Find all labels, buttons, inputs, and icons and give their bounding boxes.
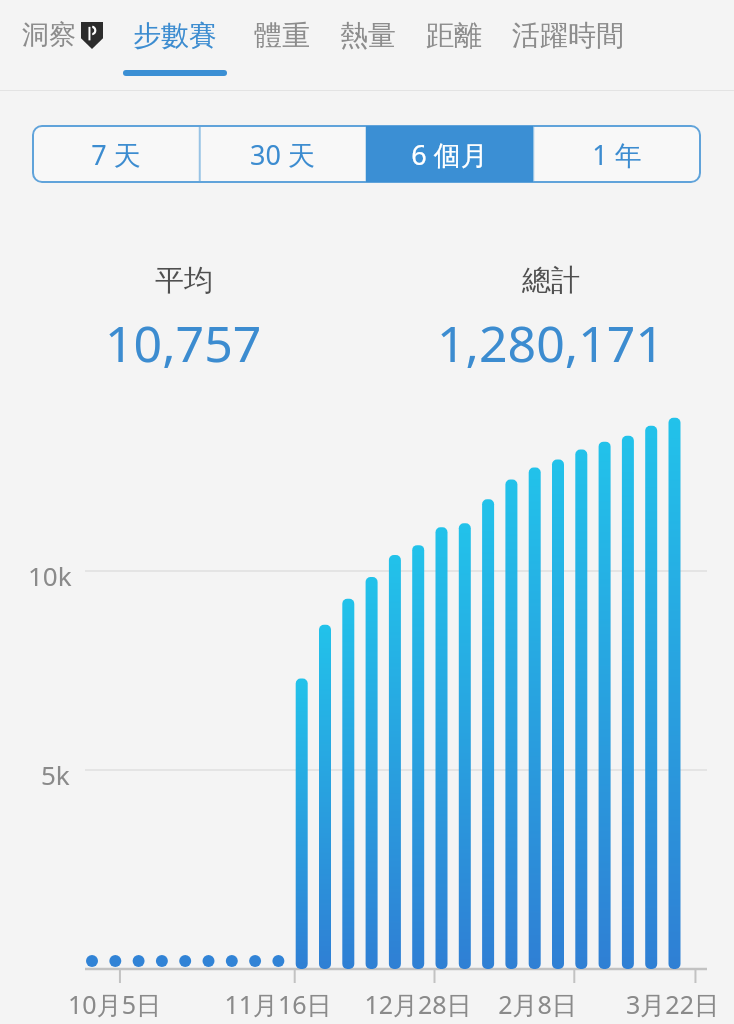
staticText: 步數賽 xyxy=(133,18,217,53)
staticText: 熱量 xyxy=(340,18,396,53)
staticText: 活躍時間 xyxy=(512,18,624,53)
staticText: 10,757 xyxy=(105,309,262,377)
button[interactable]: 1 年 xyxy=(533,126,700,182)
staticText: 3月22日 xyxy=(626,987,719,1021)
other: Insight premium badge xyxy=(81,22,103,49)
staticText: 平均 xyxy=(155,262,213,299)
staticText: 洞察 xyxy=(22,18,76,52)
button[interactable]: 體重 xyxy=(239,0,325,78)
button[interactable]: 6 個月 xyxy=(366,126,533,182)
staticText: 體重 xyxy=(254,18,310,53)
button[interactable]: 洞察 xyxy=(14,0,111,78)
staticText: 2月8日 xyxy=(498,987,577,1021)
staticText: 30 天 xyxy=(250,136,315,173)
button[interactable]: 步數賽 xyxy=(123,0,227,91)
staticText: 1,280,171 xyxy=(437,309,664,377)
button[interactable]: 7 天 xyxy=(33,126,199,182)
button[interactable]: 距離 xyxy=(411,0,497,78)
staticText: 1 年 xyxy=(592,136,642,173)
staticText: 10k xyxy=(28,558,72,593)
button[interactable]: 活躍時間 xyxy=(497,0,639,78)
staticText: 總計 xyxy=(522,262,580,299)
button[interactable]: 熱量 xyxy=(325,0,411,78)
staticText: 12月28日 xyxy=(364,987,472,1021)
staticText: 距離 xyxy=(426,18,482,53)
staticText: 6 個月 xyxy=(411,136,488,173)
staticText: 5k xyxy=(41,757,70,792)
staticText: 11月16日 xyxy=(224,987,332,1021)
staticText: 10月5日 xyxy=(68,987,161,1021)
staticText: 7 天 xyxy=(91,136,141,173)
button[interactable]: 30 天 xyxy=(199,126,366,182)
